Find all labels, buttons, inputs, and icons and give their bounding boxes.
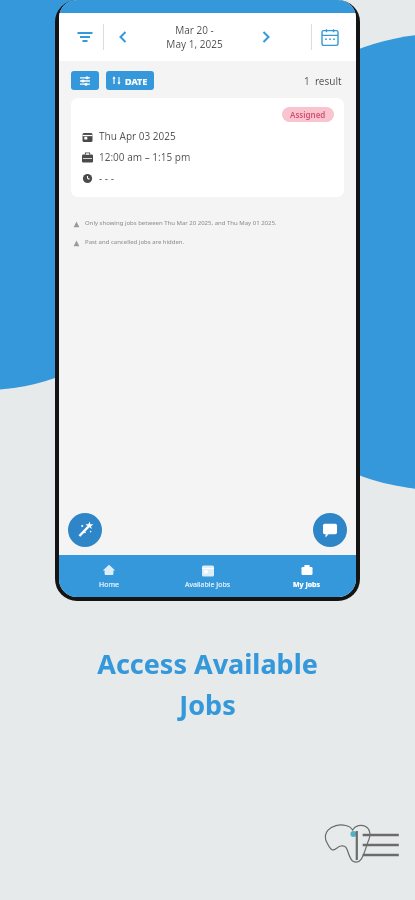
staticText: - - - [99, 171, 114, 185]
staticText: Thu Apr 03 2025 [99, 129, 176, 143]
staticText: Available Jobs [185, 580, 231, 590]
button[interactable]: Assigned [71, 98, 344, 197]
staticText: Mar 20 - [175, 23, 214, 37]
staticText: My Jobs [293, 580, 321, 590]
button[interactable]: Chat [313, 513, 347, 547]
staticText: 1 result [304, 74, 342, 88]
staticText: 12:00 am – 1:15 pm [99, 150, 191, 164]
staticText: Only showing jobs between Thu Mar 20 202… [85, 219, 277, 227]
button[interactable]: Magic suggestions [68, 513, 102, 547]
button[interactable]: Filters [71, 71, 99, 90]
button[interactable]: My Jobs [257, 555, 356, 597]
button[interactable]: Calendar [316, 23, 344, 51]
staticText: Home [99, 580, 119, 590]
staticText: Past and cancelled jobs are hidden. [85, 238, 185, 246]
staticText: Access Available [97, 645, 318, 682]
button[interactable]: DATE [106, 71, 154, 90]
button[interactable]: Available Jobs [158, 555, 257, 597]
staticText: May 1, 2025 [166, 37, 223, 51]
staticText: Assigned [290, 109, 326, 120]
staticText: Jobs [179, 686, 236, 723]
button[interactable]: Next [251, 22, 281, 52]
button[interactable]: Previous [108, 22, 138, 52]
button[interactable]: Home [59, 555, 158, 597]
button[interactable]: Filter [71, 23, 99, 51]
staticText: DATE [125, 75, 148, 87]
